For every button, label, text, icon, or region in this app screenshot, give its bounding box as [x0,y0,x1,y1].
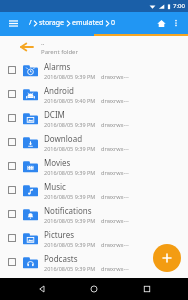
button[interactable]: More options [169,16,183,30]
staticText: 2016/08/05 9:39 PM [44,145,96,152]
staticText: Podcasts [44,253,78,264]
staticText: Parent folder [41,48,78,56]
staticText: drwxrwx--- [101,145,129,152]
staticText: Pictures [44,229,75,240]
staticText: Alarms [44,61,71,72]
staticText: drwxrwx--- [101,97,129,104]
staticText: 2016/08/05 9:39 PM [44,193,96,200]
staticText: 2016/08/05 9:39 PM [44,241,96,248]
staticText: 0 [111,18,116,28]
button[interactable]: Select Movies [0,154,188,178]
button[interactable]: Select Music [0,178,188,202]
button[interactable]: Home [153,15,169,31]
staticText: .. [41,38,45,47]
button[interactable]: .. [0,36,188,58]
button[interactable]: Menu [5,15,21,31]
button[interactable]: Home [83,278,105,300]
staticText: drwxrwx--- [101,241,129,248]
button[interactable]: Select DCIM [6,112,18,124]
button[interactable]: Select Alarms [6,64,18,76]
staticText: drwxrwx--- [101,169,129,176]
staticText: Download [44,133,83,144]
staticText: Notifications [44,205,92,216]
staticText: drwxrwx--- [101,73,129,80]
staticText: 2016/08/05 9:39 PM [44,265,96,272]
staticText: Android [44,85,74,96]
staticText: 2016/08/05 9:39 PM [44,217,96,224]
button[interactable]: Select Podcasts [6,256,18,268]
staticText: storage [39,18,65,28]
staticText: DCIM [44,109,65,120]
button[interactable]: Select Alarms [0,58,188,82]
button[interactable]: Select DCIM [0,106,188,130]
button[interactable]: Back [31,278,53,300]
button[interactable]: Select Notifications [0,202,188,226]
staticText: drwxrwx--- [101,193,129,200]
staticText: emulated [72,18,104,28]
button[interactable]: Select Pictures [6,232,18,244]
button[interactable]: Select Movies [6,160,18,172]
staticText: drwxrwx--- [101,121,129,128]
staticText: 2016/08/05 9:39 PM [44,73,96,80]
button[interactable]: / [29,18,153,28]
button[interactable]: Select Podcasts [0,250,188,274]
staticText: Music [44,181,66,192]
staticText: 2016/08/05 9:40 PM [44,97,96,104]
button[interactable]: Select Pictures [0,226,188,250]
staticText: 2016/08/05 9:39 PM [44,121,96,128]
button[interactable]: Select Download [0,130,188,154]
button[interactable]: Select Android [0,82,188,106]
button[interactable]: Add [153,244,181,272]
staticText: / [29,18,32,28]
button[interactable]: Recents [136,278,158,300]
button[interactable]: Select Music [6,184,18,196]
button[interactable]: Select Download [6,136,18,148]
button[interactable]: Select Android [6,88,18,100]
staticText: drwxrwx--- [101,217,129,224]
staticText: drwxrwx--- [101,265,129,272]
staticText: 2016/08/05 9:39 PM [44,169,96,176]
button[interactable]: Select Notifications [6,208,18,220]
staticText: Movies [44,157,71,168]
staticText: 7:00 [173,2,185,10]
